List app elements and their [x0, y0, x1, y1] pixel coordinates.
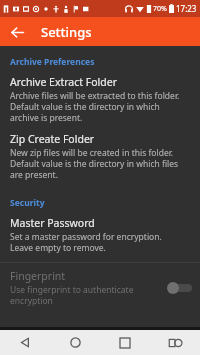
staticText: Fingerprint: [10, 269, 66, 283]
button[interactable]: Archive Extract Folder: [0, 70, 200, 127]
staticText: Archive Extract Folder: [10, 75, 118, 89]
button[interactable]: Recents: [100, 330, 150, 355]
button[interactable]: Fingerprint: [0, 263, 200, 310]
staticText: Settings: [41, 23, 92, 41]
staticText: Use fingerprint to authenticate encrypti…: [10, 284, 161, 306]
staticText: Archive Preferences: [10, 56, 95, 68]
staticText: Set a master password for encryption. Le…: [10, 231, 187, 253]
button[interactable]: Back: [5, 20, 29, 44]
staticText: Archive files will be extracted to this …: [10, 90, 187, 123]
button[interactable]: Master Password: [0, 211, 200, 257]
staticText: Master Password: [10, 216, 95, 230]
staticText: Zip Create Folder: [10, 132, 95, 146]
button[interactable]: Home: [50, 330, 100, 355]
staticText: 70%: [153, 4, 167, 14]
staticText: Security: [10, 197, 45, 209]
button[interactable]: Zip Create Folder: [0, 127, 200, 184]
button[interactable]: Screenshot: [150, 330, 200, 355]
button[interactable]: Back: [0, 330, 50, 355]
staticText: 17:23: [176, 3, 197, 14]
staticText: New zip files will be created in this fo…: [10, 147, 187, 180]
